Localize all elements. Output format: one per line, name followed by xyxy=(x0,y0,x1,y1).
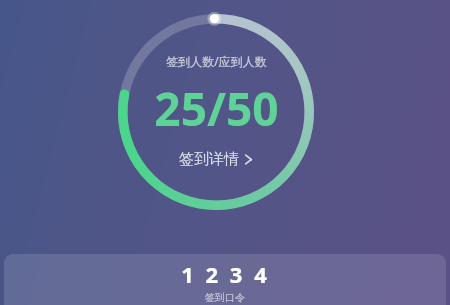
staticText: 签到口令 xyxy=(205,291,245,304)
staticText: 1 2 3 4 xyxy=(181,259,270,289)
staticText: 签到详情 xyxy=(179,150,239,169)
staticText: 25/50 xyxy=(154,77,279,140)
staticText: 签到人数/应到人数 xyxy=(166,53,267,69)
button[interactable]: 1 2 3 4 xyxy=(4,254,446,305)
button[interactable]: 签到详情 xyxy=(173,148,259,171)
